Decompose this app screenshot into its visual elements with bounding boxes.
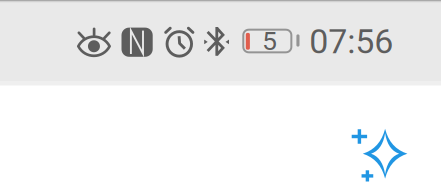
staticText: 07:56 (309, 22, 393, 61)
staticText: 5 (262, 25, 277, 57)
button[interactable]: Sparkle (352, 129, 408, 182)
